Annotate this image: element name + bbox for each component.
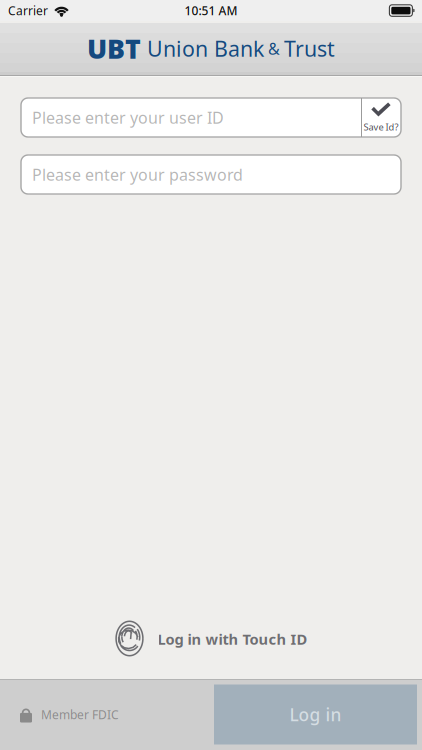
staticText: UBT xyxy=(87,31,141,66)
staticText: Trust xyxy=(284,34,335,63)
staticText: Carrier xyxy=(8,2,48,18)
staticText: Log in xyxy=(289,703,341,726)
staticText: Please enter your user ID xyxy=(32,107,224,128)
button[interactable]: Log in xyxy=(214,684,417,744)
button[interactable]: Save Id? xyxy=(361,98,401,137)
staticText: Please enter your password xyxy=(32,164,243,185)
staticText: 10:51 AM xyxy=(184,2,237,18)
staticText: Member FDIC xyxy=(41,706,119,722)
staticText: Union Bank xyxy=(141,34,264,63)
staticText: Log in with Touch ID xyxy=(157,629,307,649)
staticText: & xyxy=(264,38,284,59)
button[interactable]: Log in with Touch ID xyxy=(114,620,307,658)
staticText: Save Id? xyxy=(363,121,398,133)
